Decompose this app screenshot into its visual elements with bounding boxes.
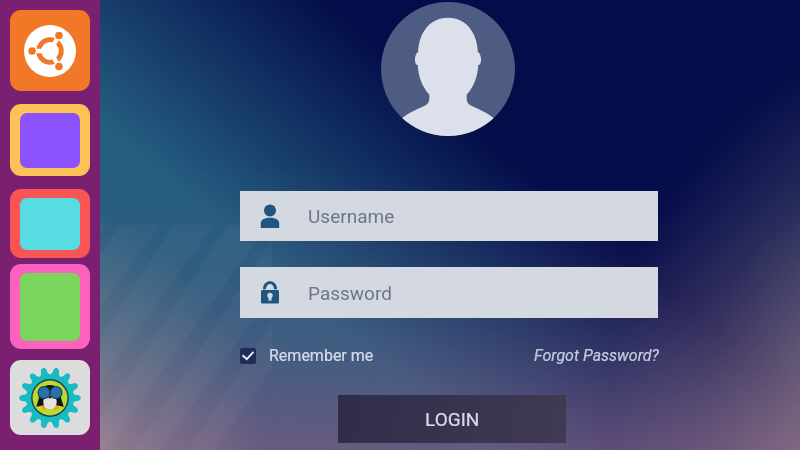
button[interactable]: Photos bbox=[10, 264, 90, 349]
staticText: Forgot Password? bbox=[534, 346, 659, 365]
button[interactable]: Files bbox=[10, 104, 90, 176]
button[interactable]: Password bbox=[240, 267, 658, 318]
button[interactable]: Username bbox=[240, 191, 658, 241]
staticText: Username bbox=[308, 205, 395, 227]
button[interactable]: Ubuntu bbox=[10, 10, 90, 91]
button[interactable]: Forgot Password? bbox=[534, 346, 659, 365]
staticText: LOGIN bbox=[425, 408, 480, 430]
button[interactable]: LOGIN bbox=[338, 395, 566, 443]
button[interactable]: Settings bbox=[10, 360, 90, 435]
button[interactable]: Music bbox=[10, 189, 90, 258]
button[interactable]: Remember me bbox=[240, 346, 374, 365]
staticText: Password bbox=[308, 282, 392, 304]
staticText: Remember me bbox=[269, 346, 374, 365]
